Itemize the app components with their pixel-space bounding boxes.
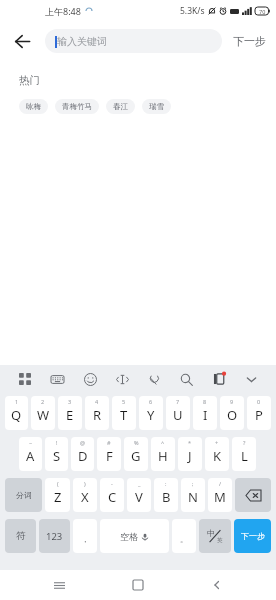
button[interactable]: 0 bbox=[247, 396, 271, 430]
staticText: % bbox=[134, 439, 139, 446]
staticText: P bbox=[255, 406, 263, 424]
staticText: Y bbox=[147, 406, 155, 424]
button[interactable]: 输入关键词 bbox=[45, 29, 222, 53]
button[interactable]: Keyboard layout bbox=[46, 368, 68, 390]
button[interactable]: 。 bbox=[172, 519, 196, 553]
staticText: Z bbox=[54, 488, 62, 506]
staticText: 70 bbox=[259, 8, 266, 15]
button[interactable]: ( bbox=[45, 478, 70, 512]
button[interactable]: ) bbox=[73, 478, 97, 512]
button[interactable]: 下一步 bbox=[222, 22, 276, 60]
staticText: ( bbox=[57, 480, 59, 487]
button[interactable]: + bbox=[205, 437, 229, 471]
staticText: 7 bbox=[176, 398, 180, 405]
staticText: 英 bbox=[217, 537, 223, 544]
button[interactable]: - bbox=[100, 478, 124, 512]
button[interactable]: # bbox=[97, 437, 121, 471]
staticText: 5.3K/s bbox=[180, 5, 205, 17]
button[interactable]: Text editing bbox=[111, 368, 133, 390]
button[interactable]: 瑞雪 bbox=[142, 99, 171, 114]
staticText: _ bbox=[138, 480, 141, 487]
button[interactable]: 2 bbox=[31, 396, 55, 430]
staticText: 热门 bbox=[19, 74, 40, 87]
staticText: W bbox=[37, 406, 50, 424]
button[interactable]: ^ bbox=[151, 437, 175, 471]
button[interactable]: 空格 bbox=[100, 519, 169, 553]
button[interactable]: 6 bbox=[139, 396, 163, 430]
button[interactable]: 青梅竹马 bbox=[55, 99, 99, 114]
staticText: ~ bbox=[29, 439, 33, 446]
button[interactable]: Back bbox=[197, 570, 237, 600]
staticText: 4 bbox=[95, 398, 99, 405]
staticText: ; bbox=[192, 480, 194, 487]
staticText: K bbox=[213, 447, 222, 465]
staticText: 青梅竹马 bbox=[62, 102, 92, 111]
staticText: - bbox=[111, 480, 113, 487]
button[interactable]: 春江 bbox=[106, 99, 135, 114]
staticText: + bbox=[215, 439, 219, 446]
button[interactable]: 4 bbox=[85, 396, 109, 430]
staticText: 。 bbox=[180, 534, 188, 544]
button[interactable]: / bbox=[208, 478, 232, 512]
button[interactable]: @ bbox=[71, 437, 94, 471]
button[interactable]: Clipboard bbox=[208, 368, 230, 390]
staticText: 上午8:48 bbox=[45, 5, 81, 17]
button[interactable]: % bbox=[124, 437, 148, 471]
button[interactable]: Recent apps bbox=[39, 570, 79, 600]
staticText: ) bbox=[84, 480, 86, 487]
button[interactable]: ! bbox=[45, 437, 68, 471]
staticText: E bbox=[66, 406, 74, 424]
button[interactable]: 中 bbox=[199, 519, 231, 553]
button[interactable]: _ bbox=[127, 478, 151, 512]
staticText: 9 bbox=[230, 398, 234, 405]
staticText: N bbox=[188, 488, 198, 506]
staticText: U bbox=[173, 406, 183, 424]
button[interactable]: Hide keyboard bbox=[240, 368, 262, 390]
staticText: Q bbox=[11, 406, 22, 424]
staticText: 符 bbox=[16, 530, 26, 542]
button[interactable]: ， bbox=[73, 519, 97, 553]
staticText: D bbox=[78, 447, 88, 465]
staticText: 3 bbox=[68, 398, 72, 405]
button[interactable]: 下一步 bbox=[234, 519, 271, 553]
staticText: 分词 bbox=[16, 490, 32, 500]
staticText: 瑞雪 bbox=[149, 102, 164, 111]
staticText: X bbox=[81, 488, 89, 506]
button[interactable]: 咏梅 bbox=[19, 99, 48, 114]
button[interactable]: Apps bbox=[14, 368, 36, 390]
staticText: L bbox=[241, 447, 248, 465]
staticText: 2 bbox=[41, 398, 45, 405]
staticText: 中 bbox=[207, 528, 215, 538]
button[interactable]: Home bbox=[118, 570, 158, 600]
button[interactable]: 8 bbox=[193, 396, 217, 430]
button[interactable]: 3 bbox=[58, 396, 82, 430]
staticText: 春江 bbox=[113, 102, 128, 111]
button[interactable]: Backspace bbox=[235, 478, 271, 512]
button[interactable]: Back bbox=[0, 22, 45, 60]
button[interactable]: 1 bbox=[5, 396, 28, 430]
staticText: 123 bbox=[46, 530, 63, 543]
button[interactable]: ~ bbox=[19, 437, 42, 471]
button[interactable]: 9 bbox=[220, 396, 244, 430]
staticText: 空格 bbox=[120, 531, 138, 542]
button[interactable]: 123 bbox=[39, 519, 70, 553]
button[interactable]: Emoji bbox=[79, 368, 101, 390]
staticText: R bbox=[93, 406, 102, 424]
staticText: H bbox=[158, 447, 168, 465]
button[interactable]: Search bbox=[175, 368, 197, 390]
button[interactable]: 符 bbox=[5, 519, 36, 553]
button[interactable]: Attach bbox=[143, 368, 165, 390]
button[interactable]: ? bbox=[232, 437, 256, 471]
staticText: J bbox=[188, 447, 192, 465]
button[interactable]: ; bbox=[181, 478, 205, 512]
button[interactable]: 7 bbox=[166, 396, 190, 430]
staticText: V bbox=[135, 488, 143, 506]
staticText: # bbox=[107, 439, 111, 446]
button[interactable]: * bbox=[178, 437, 202, 471]
button[interactable]: : bbox=[154, 478, 178, 512]
button[interactable]: 5 bbox=[112, 396, 136, 430]
staticText: 咏梅 bbox=[26, 102, 41, 111]
button[interactable]: 分词 bbox=[5, 478, 42, 512]
staticText: 6 bbox=[149, 398, 153, 405]
staticText: T bbox=[120, 406, 128, 424]
